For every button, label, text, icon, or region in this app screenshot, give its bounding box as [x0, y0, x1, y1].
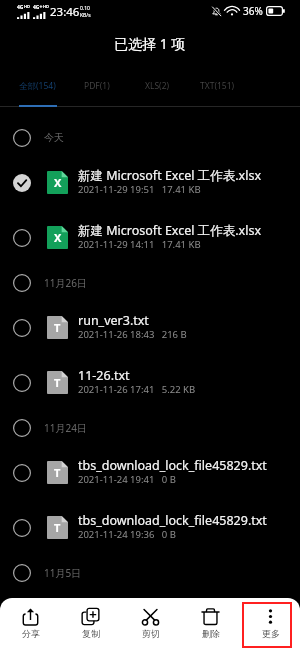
staticText: tbs_download_lock_file45829.txt: [78, 512, 267, 529]
button[interactable]: T: [0, 300, 300, 355]
staticText: T: [54, 520, 61, 535]
staticText: 新建 Microsoft Excel 工作表.xlsx: [78, 167, 262, 184]
staticText: 2021-11-24 19:41 0 B: [78, 473, 176, 486]
staticText: 复制: [82, 628, 100, 639]
staticText: KB/s: [80, 12, 91, 19]
button[interactable]: 11月5日: [0, 555, 300, 590]
staticText: 更多: [262, 628, 280, 639]
button[interactable]: T: [0, 355, 300, 410]
button[interactable]: 今天: [0, 120, 300, 155]
staticText: 11月5日: [44, 566, 82, 580]
staticText: 4G+: [33, 4, 43, 11]
other: Delete: [201, 607, 220, 626]
staticText: HD: [43, 4, 49, 9]
button[interactable]: Delete: [180, 598, 240, 650]
staticText: 4G: [17, 4, 24, 11]
staticText: T: [54, 465, 61, 480]
other: Share: [21, 607, 40, 626]
staticText: 11-26.txt: [78, 367, 130, 384]
button[interactable]: Share: [0, 598, 60, 650]
staticText: 23:46: [50, 4, 80, 20]
button[interactable]: T: [0, 500, 300, 555]
staticText: X: [54, 175, 62, 190]
staticText: 2021-11-29 14:11 17.41 KB: [78, 238, 201, 251]
staticText: XLS(2): [145, 80, 170, 92]
staticText: T: [54, 375, 61, 390]
staticText: 已选择 1 项: [114, 34, 186, 53]
staticText: TXT(151): [200, 80, 235, 92]
button[interactable]: 11月26日: [0, 265, 300, 300]
staticText: X: [54, 230, 62, 245]
staticText: 分享: [22, 628, 40, 639]
staticText: run_ver3.txt: [78, 312, 149, 329]
button[interactable]: Copy: [60, 598, 120, 650]
staticText: 2021-11-26 17:41 5.22 KB: [78, 383, 196, 396]
staticText: HD: [24, 4, 30, 9]
staticText: 2021-11-26 18:43 216 B: [78, 328, 187, 341]
other: Cut: [141, 607, 160, 626]
staticText: PDF(1): [84, 80, 110, 92]
button[interactable]: X: [0, 155, 300, 210]
staticText: tbs_download_lock_file45829.txt: [78, 457, 267, 474]
staticText: 0.10: [80, 5, 90, 12]
staticText: T: [54, 320, 61, 335]
staticText: 2021-11-24 19:36 0 B: [78, 528, 176, 541]
staticText: 11月24日: [44, 421, 87, 435]
button[interactable]: TXT(151): [187, 64, 247, 107]
staticText: 新建 Microsoft Excel 工作表.xlsx: [78, 222, 262, 239]
button[interactable]: 11月24日: [0, 410, 300, 445]
other: Copy: [81, 607, 100, 626]
staticText: 更多: [262, 628, 280, 639]
button[interactable]: X: [0, 210, 300, 265]
button[interactable]: PDF(1): [67, 64, 127, 107]
staticText: 36%: [243, 4, 263, 18]
staticText: 全部(154): [19, 80, 56, 92]
staticText: 今天: [44, 131, 64, 144]
staticText: 删除: [202, 628, 220, 639]
button[interactable]: More: [240, 598, 300, 650]
button[interactable]: Cut: [120, 598, 180, 650]
staticText: 剪切: [142, 628, 160, 639]
other: More: [261, 607, 280, 626]
staticText: 11月26日: [44, 276, 87, 290]
button[interactable]: XLS(2): [127, 64, 187, 107]
button[interactable]: T: [0, 445, 300, 500]
button[interactable]: 全部(154): [7, 64, 67, 107]
staticText: 2021-11-29 19:51 17.41 KB: [78, 183, 201, 196]
other: More: [261, 607, 280, 626]
